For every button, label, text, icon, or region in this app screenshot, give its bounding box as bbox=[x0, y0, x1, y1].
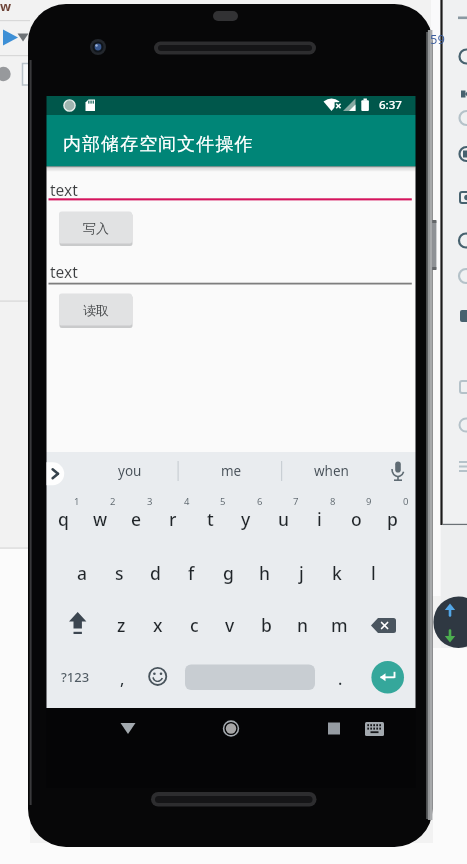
staticText: 8 bbox=[330, 495, 336, 508]
button[interactable] bbox=[192, 490, 228, 542]
staticText: s bbox=[115, 561, 124, 585]
button[interactable] bbox=[371, 661, 404, 694]
button[interactable] bbox=[213, 710, 249, 746]
staticText: w bbox=[0, 0, 12, 15]
staticText: t bbox=[207, 507, 214, 531]
staticText: , bbox=[120, 668, 125, 690]
staticText: i bbox=[317, 507, 322, 531]
staticText: o bbox=[351, 507, 362, 531]
button[interactable] bbox=[137, 546, 173, 598]
staticText: 59 bbox=[430, 30, 445, 48]
staticText: j bbox=[299, 561, 304, 585]
button[interactable] bbox=[104, 652, 140, 704]
staticText: me bbox=[221, 462, 242, 480]
staticText: c bbox=[190, 613, 199, 637]
button[interactable] bbox=[284, 599, 320, 651]
button[interactable] bbox=[59, 294, 132, 326]
button[interactable] bbox=[173, 546, 209, 598]
button[interactable] bbox=[210, 546, 246, 598]
button[interactable] bbox=[322, 652, 358, 704]
button[interactable] bbox=[44, 452, 74, 487]
button[interactable] bbox=[321, 599, 357, 651]
staticText: text bbox=[50, 261, 78, 282]
button[interactable] bbox=[49, 174, 412, 201]
staticText: text bbox=[50, 179, 78, 200]
staticText: . bbox=[338, 668, 343, 690]
button[interactable] bbox=[374, 490, 410, 542]
button[interactable] bbox=[77, 452, 177, 487]
button[interactable] bbox=[360, 710, 390, 746]
button[interactable] bbox=[82, 490, 118, 542]
staticText: r bbox=[169, 507, 177, 531]
button[interactable] bbox=[103, 599, 139, 651]
staticText: z bbox=[117, 613, 126, 637]
button[interactable] bbox=[64, 546, 100, 598]
staticText: you bbox=[118, 462, 142, 480]
button[interactable] bbox=[316, 710, 352, 746]
button[interactable] bbox=[319, 546, 355, 598]
button[interactable] bbox=[365, 599, 405, 651]
button[interactable] bbox=[248, 599, 284, 651]
staticText: 6:37 bbox=[379, 97, 402, 113]
button[interactable] bbox=[301, 490, 337, 542]
button[interactable] bbox=[355, 546, 391, 598]
button[interactable] bbox=[265, 490, 301, 542]
button[interactable] bbox=[140, 599, 176, 651]
staticText: n bbox=[297, 613, 308, 637]
staticText: q bbox=[58, 507, 69, 531]
staticText: v bbox=[225, 613, 235, 637]
staticText: 9 bbox=[366, 495, 372, 508]
staticText: ?123 bbox=[61, 668, 90, 686]
staticText: u bbox=[278, 507, 289, 531]
button[interactable] bbox=[101, 546, 137, 598]
button[interactable] bbox=[338, 490, 374, 542]
staticText: 读取 bbox=[83, 302, 109, 318]
staticText: p bbox=[387, 507, 398, 531]
button[interactable] bbox=[55, 652, 97, 704]
staticText: b bbox=[261, 613, 272, 637]
button[interactable] bbox=[384, 452, 415, 487]
staticText: 3 bbox=[147, 495, 153, 508]
button[interactable] bbox=[58, 599, 98, 651]
staticText: 写入 bbox=[83, 220, 109, 236]
staticText: d bbox=[150, 561, 161, 585]
staticText: e bbox=[131, 507, 142, 531]
button[interactable] bbox=[176, 599, 212, 651]
button[interactable] bbox=[140, 652, 176, 704]
staticText: x bbox=[153, 613, 163, 637]
staticText: 5 bbox=[220, 495, 226, 508]
button[interactable] bbox=[228, 490, 264, 542]
staticText: h bbox=[259, 561, 270, 585]
staticText: k bbox=[332, 561, 342, 585]
button[interactable] bbox=[283, 546, 319, 598]
staticText: 内部储存空间文件操作 bbox=[63, 133, 254, 156]
staticText: 2 bbox=[110, 495, 116, 508]
staticText: f bbox=[188, 561, 195, 585]
staticText: 1 bbox=[74, 495, 80, 508]
staticText: 7 bbox=[293, 495, 299, 508]
button[interactable] bbox=[49, 258, 412, 285]
button[interactable] bbox=[185, 665, 315, 691]
button[interactable] bbox=[155, 490, 191, 542]
staticText: a bbox=[77, 561, 88, 585]
staticText: w bbox=[93, 507, 108, 531]
staticText: l bbox=[371, 561, 376, 585]
staticText: y bbox=[241, 507, 251, 531]
staticText: 6 bbox=[257, 495, 263, 508]
button[interactable] bbox=[246, 546, 282, 598]
button[interactable] bbox=[118, 490, 154, 542]
button[interactable] bbox=[59, 212, 132, 244]
staticText: g bbox=[223, 561, 234, 585]
button[interactable] bbox=[284, 452, 384, 487]
staticText: when bbox=[314, 462, 349, 480]
staticText: 0 bbox=[403, 495, 409, 508]
staticText: 4 bbox=[184, 495, 190, 508]
button[interactable] bbox=[181, 452, 281, 487]
button[interactable] bbox=[212, 599, 248, 651]
staticText: m bbox=[331, 613, 348, 637]
button[interactable] bbox=[110, 710, 146, 746]
button[interactable] bbox=[45, 490, 81, 542]
